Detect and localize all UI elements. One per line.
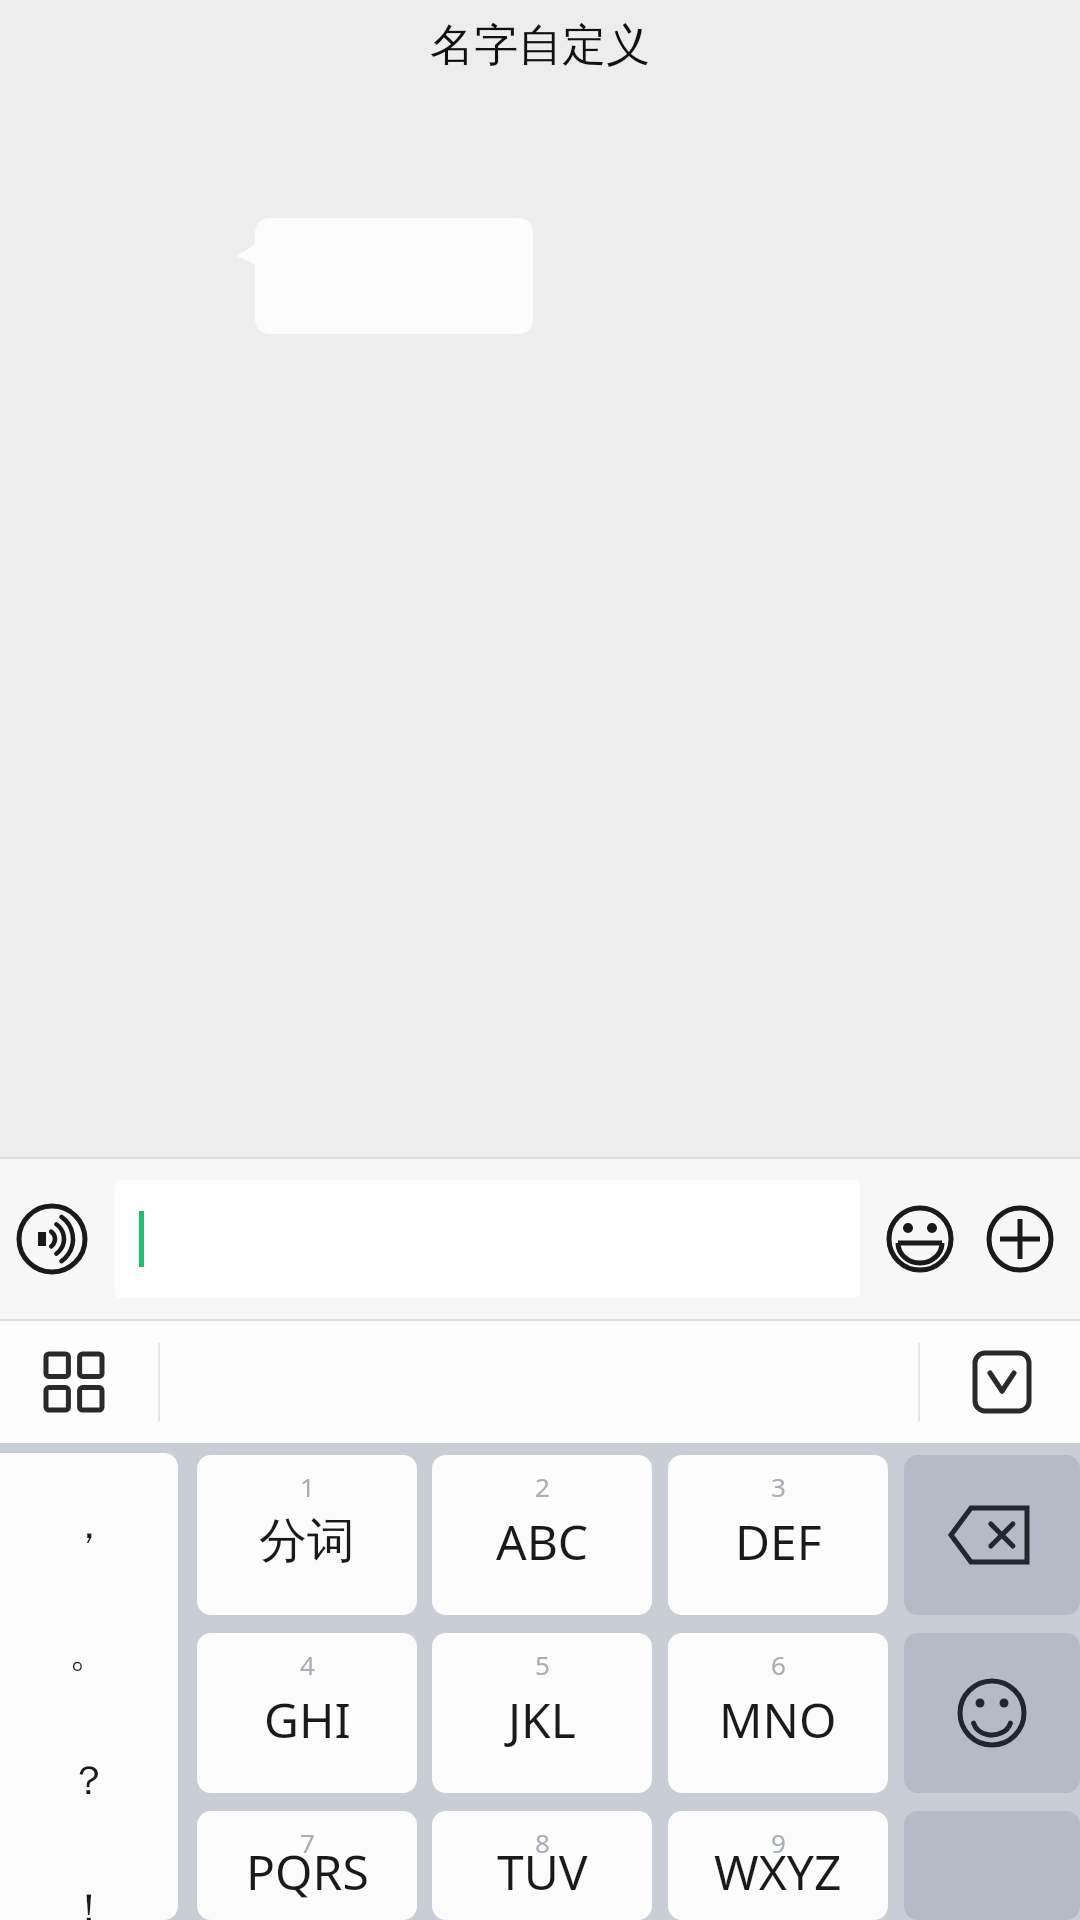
button[interactable]: Keyboard layouts xyxy=(32,1340,116,1424)
button[interactable]: 6 xyxy=(668,1633,888,1793)
staticText: 。 xyxy=(69,1627,109,1677)
staticText: PQRS xyxy=(246,1839,369,1904)
staticText: 6 xyxy=(771,1647,786,1682)
button[interactable]: 4 xyxy=(197,1633,417,1793)
button[interactable]: ， xyxy=(0,1453,178,1920)
staticText: 3 xyxy=(771,1469,786,1504)
button[interactable]: 8 xyxy=(432,1811,652,1920)
button[interactable]: More xyxy=(978,1197,1062,1281)
button[interactable]: Emoji xyxy=(878,1197,962,1281)
staticText: 9 xyxy=(771,1825,786,1860)
button[interactable]: Backspace xyxy=(904,1455,1080,1615)
button[interactable]: 2 xyxy=(432,1455,652,1615)
staticText: WXYZ xyxy=(714,1839,842,1904)
staticText: 1 xyxy=(300,1469,315,1504)
staticText: ， xyxy=(69,1499,109,1549)
staticText: JKL xyxy=(508,1687,576,1752)
staticText: 8 xyxy=(535,1825,550,1860)
staticText: ？ xyxy=(69,1755,109,1805)
staticText: 5 xyxy=(535,1647,550,1682)
button[interactable]: 5 xyxy=(432,1633,652,1793)
staticText: 名字自定义 xyxy=(0,18,1080,73)
button[interactable]: Voice input xyxy=(10,1197,94,1281)
button[interactable] xyxy=(237,218,533,334)
button[interactable]: 7 xyxy=(197,1811,417,1920)
staticText: 4 xyxy=(300,1647,315,1682)
button[interactable]: 9 xyxy=(668,1811,888,1920)
staticText: ABC xyxy=(496,1509,589,1574)
button[interactable]: Emoji keyboard xyxy=(904,1633,1080,1793)
staticText: GHI xyxy=(264,1687,351,1752)
button[interactable]: 3 xyxy=(668,1455,888,1615)
staticText: 2 xyxy=(535,1469,550,1504)
staticText: DEF xyxy=(735,1509,822,1574)
staticText: 分词 xyxy=(259,1511,355,1571)
button[interactable] xyxy=(115,1180,860,1298)
button[interactable]: Hide keyboard xyxy=(960,1340,1044,1424)
button[interactable]: 1 xyxy=(197,1455,417,1615)
staticText: TUV xyxy=(497,1839,588,1904)
staticText: MNO xyxy=(719,1687,837,1752)
staticText: ！ xyxy=(69,1883,109,1920)
staticText: 7 xyxy=(300,1825,315,1860)
